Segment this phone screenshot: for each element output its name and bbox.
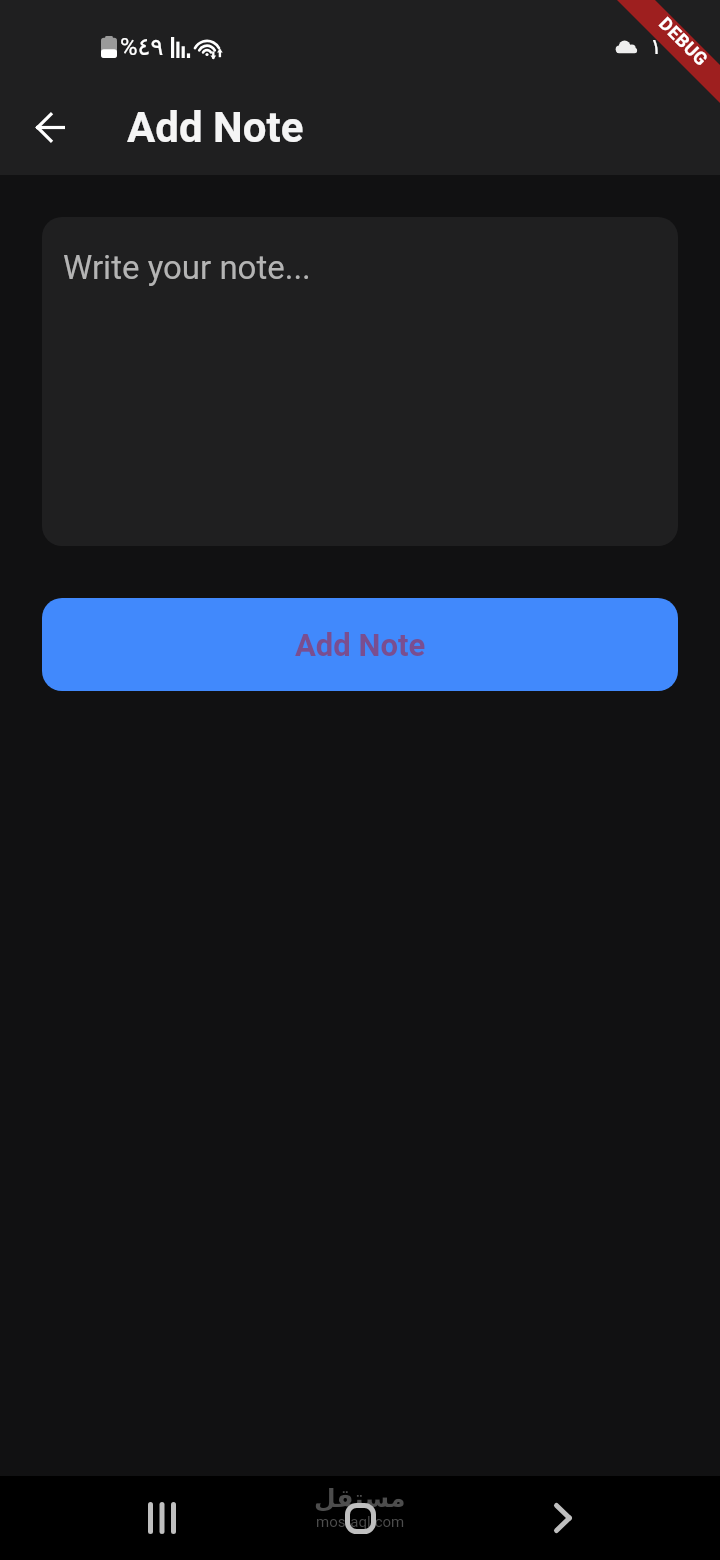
button[interactable]: Back (26, 103, 74, 151)
button[interactable]: Back (535, 1490, 591, 1546)
staticText: Write your note... (63, 248, 311, 287)
button[interactable]: Write your note... (42, 217, 678, 546)
button[interactable]: Add Note (42, 598, 678, 691)
staticText: Add Note (295, 627, 426, 663)
button[interactable]: Recent apps (134, 1490, 190, 1546)
staticText: Add Note (127, 103, 304, 152)
button[interactable]: Home (332, 1490, 388, 1546)
staticText: DEBUG (655, 13, 712, 70)
staticText: مستقل (314, 1484, 406, 1513)
staticText: mostaql.com (316, 1513, 405, 1531)
staticText: %٤٩ (120, 33, 164, 61)
staticText: ١٠:٠٠ (650, 34, 703, 60)
